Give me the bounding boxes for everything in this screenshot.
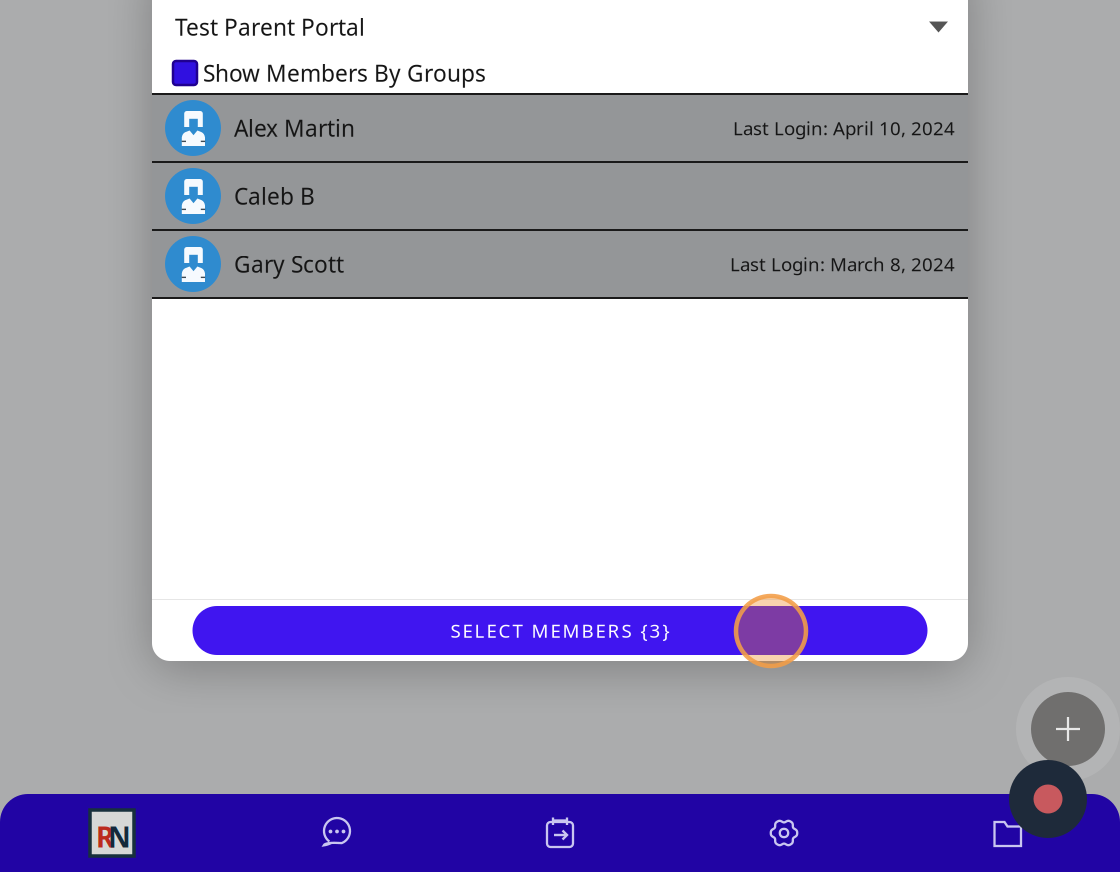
button[interactable]: Show Members By Groups	[152, 53, 968, 93]
staticText: Last Login: April 10, 2024	[733, 116, 955, 140]
staticText: Last Login: March 8, 2024	[730, 252, 955, 276]
staticText: Gary Scott	[234, 249, 344, 279]
button[interactable]: Caleb B	[152, 163, 968, 229]
button[interactable]: Alex Martin	[152, 95, 968, 161]
staticText: SELECT MEMBERS {3}	[450, 618, 669, 643]
button[interactable]: Add	[1031, 692, 1105, 766]
staticText: R	[96, 818, 114, 855]
staticText: Alex Martin	[234, 113, 355, 143]
button[interactable]: Test Parent Portal	[152, 4, 968, 50]
staticText: N	[108, 818, 131, 855]
staticText: Test Parent Portal	[175, 12, 365, 42]
button[interactable]: Record	[1009, 760, 1087, 838]
button[interactable]: Files	[896, 794, 1120, 872]
button[interactable]: Settings	[672, 794, 896, 872]
button[interactable]: Home	[0, 794, 224, 872]
button[interactable]: Gary Scott	[152, 231, 968, 297]
button[interactable]: Schedule	[448, 794, 672, 872]
staticText: Show Members By Groups	[203, 58, 486, 88]
button[interactable]: SELECT MEMBERS {3}	[192, 606, 927, 655]
staticText: Caleb B	[234, 181, 315, 211]
button[interactable]: Messages	[224, 794, 448, 872]
